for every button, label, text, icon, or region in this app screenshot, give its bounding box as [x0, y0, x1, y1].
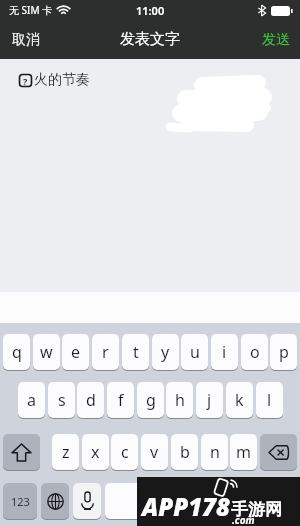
staticText: l	[267, 389, 272, 411]
button[interactable]: p	[270, 334, 297, 370]
staticText: p	[279, 341, 289, 363]
staticText: u	[190, 341, 200, 363]
staticText: 123	[11, 494, 30, 509]
button[interactable]	[41, 483, 69, 519]
button[interactable]: c	[111, 434, 138, 470]
button[interactable]: o	[241, 334, 268, 370]
button[interactable]	[260, 434, 297, 470]
button[interactable]: d	[77, 382, 104, 418]
button[interactable]: a	[18, 382, 45, 418]
staticText: 发表文字	[120, 30, 180, 49]
staticText: o	[250, 341, 260, 363]
staticText: e	[71, 341, 81, 363]
staticText: j	[207, 389, 212, 411]
staticText: q	[12, 341, 22, 363]
button[interactable]: v	[141, 434, 168, 470]
staticText: k	[235, 389, 244, 411]
staticText: 发送	[262, 31, 290, 49]
button[interactable]: e	[62, 334, 89, 370]
button[interactable]: m	[230, 434, 257, 470]
button[interactable]: z	[52, 434, 79, 470]
button[interactable]: j	[196, 382, 223, 418]
button[interactable]: y	[152, 334, 179, 370]
staticText: c	[121, 441, 129, 463]
staticText: i	[222, 341, 227, 363]
staticText: n	[210, 441, 220, 463]
button[interactable]: n	[201, 434, 228, 470]
staticText: h	[175, 389, 185, 411]
staticText: d	[86, 389, 96, 411]
staticText: y	[161, 341, 170, 363]
button[interactable]	[73, 483, 101, 519]
staticText: z	[62, 441, 70, 463]
button[interactable]: g	[137, 382, 164, 418]
button[interactable]: f	[107, 382, 134, 418]
button[interactable]: t	[122, 334, 149, 370]
staticText: t	[133, 341, 139, 363]
staticText: APP178	[142, 490, 230, 523]
staticText: .com	[232, 513, 255, 526]
button[interactable]	[105, 483, 220, 519]
button[interactable]: r	[92, 334, 119, 370]
button[interactable]: 发送	[258, 27, 294, 53]
button[interactable]: q	[3, 334, 30, 370]
staticText: a	[27, 389, 36, 411]
staticText: w	[40, 341, 53, 363]
button[interactable]: k	[226, 382, 253, 418]
button[interactable]: x	[82, 434, 109, 470]
staticText: r	[102, 341, 109, 363]
staticText: g	[146, 389, 156, 411]
button[interactable]: i	[211, 334, 238, 370]
staticText: 11:00	[136, 3, 165, 18]
button[interactable]: l	[256, 382, 283, 418]
staticText: 手游网	[231, 499, 282, 520]
staticText: f	[118, 389, 124, 411]
staticText: x	[91, 441, 100, 463]
button[interactable]: s	[48, 382, 75, 418]
staticText: ?	[23, 75, 28, 87]
button[interactable]: u	[181, 334, 208, 370]
staticText: 火的节奏	[34, 71, 90, 89]
staticText: 无 SIM 卡	[9, 3, 53, 17]
button[interactable]: b	[171, 434, 198, 470]
staticText: m	[236, 441, 251, 463]
button[interactable]: h	[166, 382, 193, 418]
button[interactable]: 取消	[8, 27, 44, 53]
staticText: s	[58, 389, 66, 411]
button[interactable]	[3, 434, 40, 470]
button[interactable]: w	[33, 334, 60, 370]
staticText: b	[180, 441, 190, 463]
staticText: v	[150, 441, 159, 463]
staticText: 取消	[12, 31, 40, 49]
button[interactable]	[224, 483, 297, 519]
button[interactable]: 123	[3, 483, 37, 519]
